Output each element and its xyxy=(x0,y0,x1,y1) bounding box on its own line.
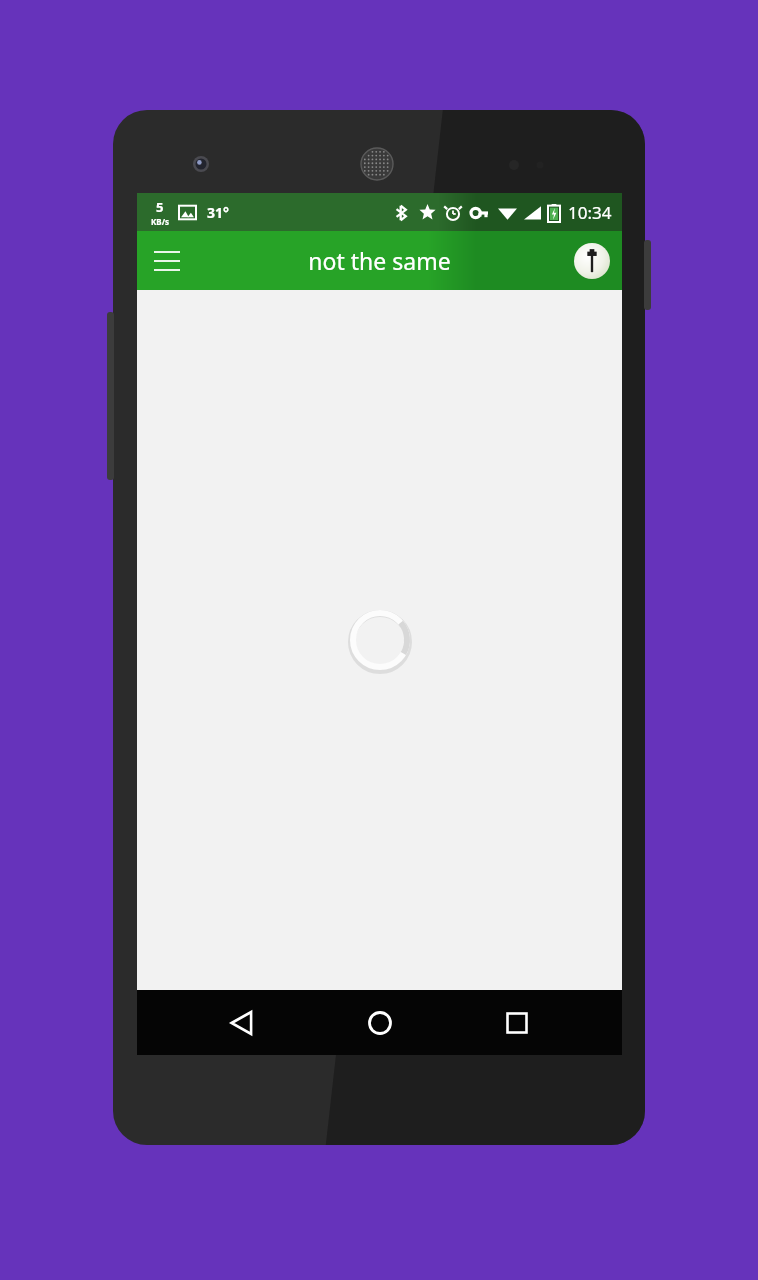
staticText: 5 xyxy=(156,198,164,216)
button[interactable]: Open navigation menu xyxy=(143,237,191,285)
button[interactable]: Profile xyxy=(570,239,614,283)
staticText: not the same xyxy=(308,245,451,276)
staticText: KB/s xyxy=(151,216,169,227)
staticText: 31° xyxy=(207,203,229,222)
button[interactable]: Home xyxy=(348,991,412,1055)
button[interactable]: Recent apps xyxy=(485,991,549,1055)
button[interactable]: Back xyxy=(210,991,274,1055)
staticText: 10:34 xyxy=(568,201,612,224)
